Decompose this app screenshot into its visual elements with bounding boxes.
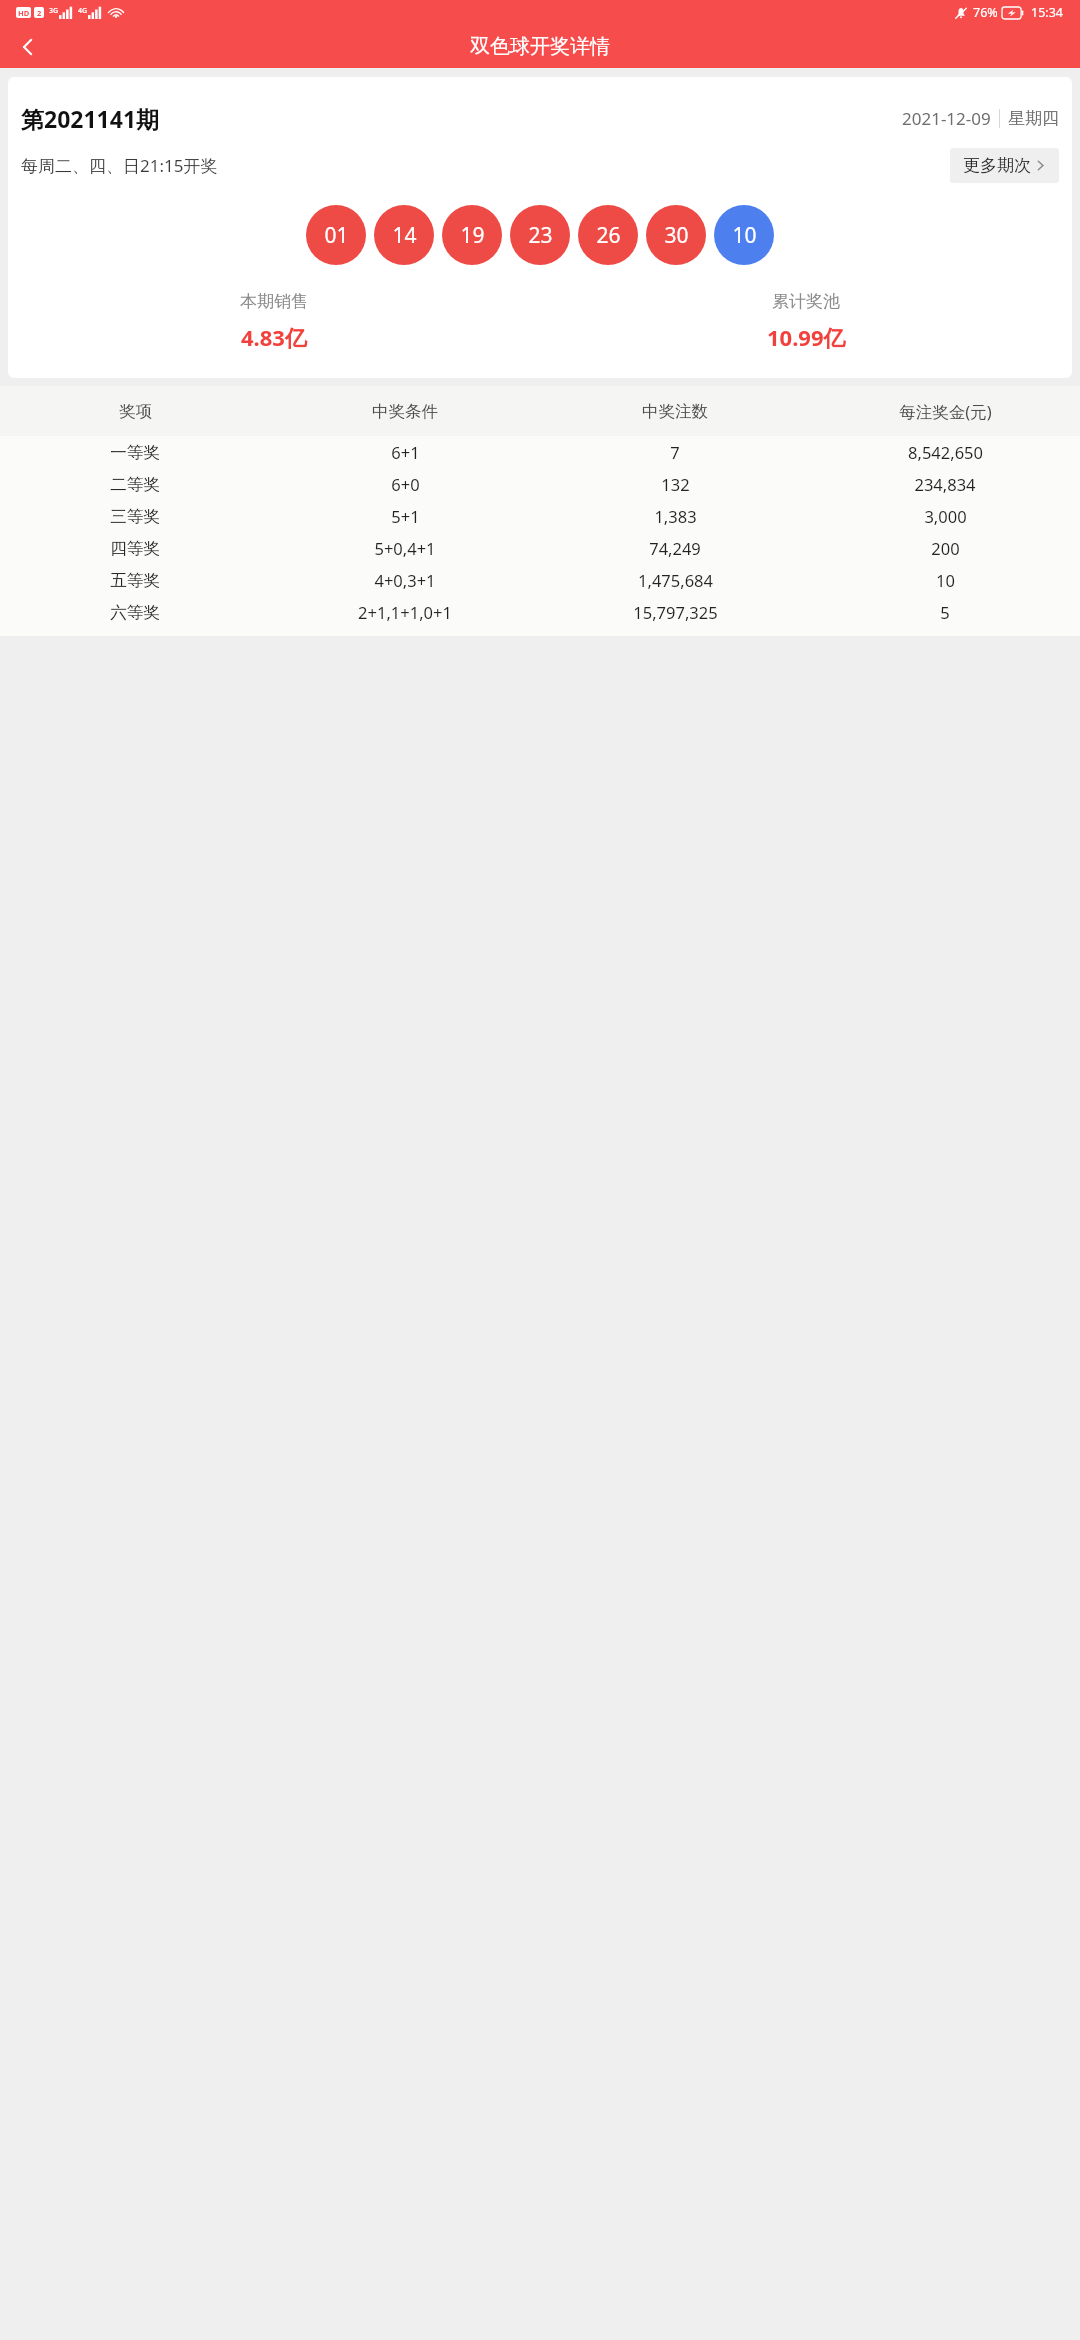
staticText: 2021-12-09 [902, 107, 991, 130]
staticText: 4G [78, 6, 88, 16]
button[interactable]: Back [6, 25, 50, 68]
staticText: 8,542,650 [908, 441, 983, 463]
staticText: 五等奖 [110, 570, 160, 591]
staticText: 26 [596, 221, 621, 250]
staticText: 76% [973, 4, 998, 21]
staticText: 累计奖池 [772, 291, 840, 312]
staticText: 14 [392, 221, 417, 250]
staticText: 二等奖 [110, 474, 160, 495]
staticText: 10.99亿 [767, 322, 846, 352]
staticText: 5+1 [391, 505, 420, 527]
staticText: 六等奖 [110, 602, 160, 623]
staticText: 200 [931, 537, 960, 559]
button[interactable]: 更多期次 [950, 148, 1059, 183]
staticText: 01 [324, 221, 349, 250]
staticText: 5+0,4+1 [374, 537, 436, 559]
staticText: HD [18, 8, 30, 18]
staticText: 10 [732, 221, 757, 250]
staticText: 奖项 [119, 401, 152, 422]
staticText: 4.83亿 [241, 322, 307, 352]
staticText: 四等奖 [110, 538, 160, 559]
staticText: 1,383 [654, 505, 697, 527]
staticText: 30 [664, 221, 689, 250]
staticText: 74,249 [649, 537, 701, 559]
staticText: 一等奖 [110, 442, 160, 463]
staticText: 1,475,684 [638, 569, 713, 591]
staticText: 23 [528, 221, 553, 250]
staticText: 132 [661, 473, 690, 495]
staticText: 中奖注数 [642, 401, 708, 422]
staticText: 星期四 [1008, 108, 1059, 129]
staticText: 双色球开奖详情 [470, 34, 610, 59]
staticText: 更多期次 [963, 155, 1031, 176]
staticText: 三等奖 [110, 506, 160, 527]
staticText: 每注奖金(元) [899, 400, 992, 423]
staticText: 中奖条件 [372, 401, 438, 422]
staticText: 本期销售 [240, 291, 308, 312]
staticText: 第2021141期 [21, 103, 160, 134]
staticText: 234,834 [914, 473, 976, 495]
staticText: 7 [670, 441, 680, 463]
staticText: 4+0,3+1 [374, 569, 436, 591]
staticText: 10 [936, 569, 955, 591]
staticText: 6+1 [391, 441, 420, 463]
staticText: 6+0 [391, 473, 420, 495]
staticText: 3G [49, 6, 59, 16]
staticText: 15:34 [1031, 4, 1063, 21]
staticText: 3,000 [924, 505, 967, 527]
staticText: 2+1,1+1,0+1 [358, 601, 452, 623]
staticText: 每周二、四、日21:15开奖 [21, 154, 218, 177]
staticText: 5 [940, 601, 950, 623]
staticText: 19 [460, 221, 485, 250]
staticText: 2 [37, 8, 42, 18]
staticText: 15,797,325 [633, 601, 718, 623]
